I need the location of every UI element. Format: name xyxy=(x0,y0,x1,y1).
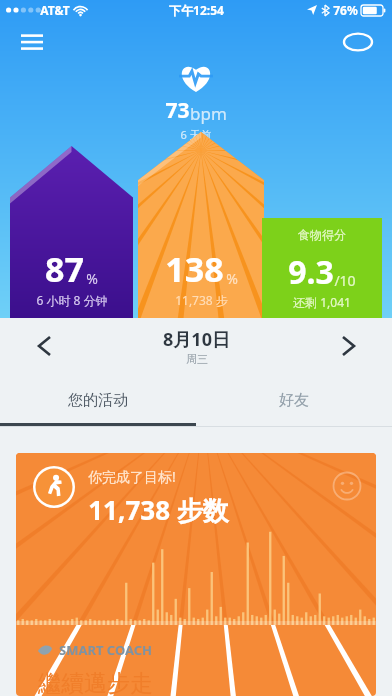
staticText: 11,738 步 xyxy=(175,292,228,308)
button[interactable]: Next day xyxy=(326,324,370,368)
staticText: /10 xyxy=(334,271,356,290)
button[interactable]: 食物得分 xyxy=(262,218,382,318)
button[interactable]: 138 xyxy=(138,132,264,318)
button[interactable]: 好友 xyxy=(196,374,392,426)
staticText: 8月10日 xyxy=(163,327,230,352)
button[interactable]: 您的活动 xyxy=(0,374,196,426)
staticText: % xyxy=(226,269,238,288)
staticText: 您的活动 xyxy=(68,391,128,410)
staticText: 繼續邁步走 xyxy=(38,669,153,696)
staticText: 食物得分 xyxy=(298,227,346,242)
button[interactable]: Previous day xyxy=(22,324,66,368)
staticText: SMART COACH xyxy=(59,641,152,659)
staticText: 6 天前 xyxy=(180,127,212,142)
staticText: 9.3 xyxy=(288,250,334,294)
button[interactable]: Device xyxy=(338,22,378,62)
staticText: 你完成了目标! xyxy=(88,467,176,486)
staticText: 11,738 步数 xyxy=(88,492,229,528)
staticText: 138 xyxy=(165,246,224,292)
button[interactable]: Menu xyxy=(14,24,50,60)
staticText: AT&T xyxy=(40,2,70,18)
staticText: 下午12:54 xyxy=(169,2,224,18)
staticText: 6 小时 8 分钟 xyxy=(36,292,108,308)
staticText: 周三 xyxy=(186,352,208,366)
staticText: 87 xyxy=(45,246,84,292)
staticText: 73 xyxy=(165,96,190,125)
staticText: % xyxy=(86,269,98,288)
button[interactable]: Mood xyxy=(332,471,362,501)
button[interactable]: Steps xyxy=(16,453,376,696)
button[interactable]: 87 xyxy=(10,146,133,318)
staticText: 还剩 1,041 xyxy=(293,294,351,310)
staticText: 好友 xyxy=(279,391,309,410)
staticText: 76% xyxy=(333,2,358,18)
staticText: bpm xyxy=(190,102,227,125)
button[interactable]: Steps xyxy=(32,465,76,509)
